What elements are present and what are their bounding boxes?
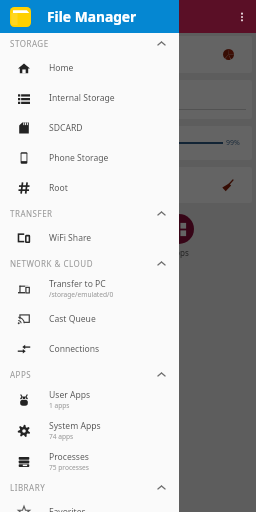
button[interactable]	[4, 36, 252, 73]
staticText: System Apps	[49, 420, 101, 432]
button[interactable]: More options	[228, 0, 256, 33]
button[interactable]: Internal Storage	[0, 83, 179, 113]
staticText: STORAGE	[10, 38, 49, 49]
staticText: WiFi Share	[49, 232, 92, 244]
staticText: Transfer to PC	[49, 278, 106, 290]
staticText: Cast Queue	[49, 313, 96, 325]
button[interactable]: APPS	[0, 364, 179, 384]
staticText: Favorites	[49, 506, 86, 512]
staticText: 75 processes	[49, 463, 89, 472]
button[interactable]	[4, 167, 252, 203]
staticText: Phone Storage	[49, 152, 109, 164]
button[interactable]: Favorites	[0, 497, 179, 512]
button[interactable]: Images	[54, 214, 104, 258]
staticText: NETWORK & CLOUD	[10, 258, 94, 269]
button[interactable]: SDCARD	[0, 113, 179, 143]
button[interactable]: Phone Storage	[0, 143, 179, 173]
staticText: SDCARD	[49, 122, 83, 134]
staticText: 1 apps	[49, 401, 70, 410]
staticText: /storage/emulated/0	[49, 290, 114, 299]
button[interactable]: File Manager	[0, 0, 179, 33]
staticText: Home	[49, 62, 74, 74]
button[interactable]: STORAGE	[0, 33, 179, 53]
button[interactable]: WiFi Share	[0, 223, 179, 253]
staticText: Processes	[49, 451, 89, 463]
staticText: TRANSFER	[10, 208, 53, 219]
button[interactable]: TRANSFER	[0, 203, 179, 223]
button[interactable]: System Apps	[0, 415, 179, 446]
staticText: 74 apps	[49, 432, 74, 441]
staticText: 99%	[226, 138, 240, 148]
button[interactable]	[4, 80, 252, 119]
button[interactable]: NETWORK & CLOUD	[0, 253, 179, 273]
button[interactable]: 99%	[4, 126, 252, 160]
staticText: Root	[49, 182, 68, 194]
button[interactable]: Root	[0, 173, 179, 203]
button[interactable]: Processes	[0, 446, 179, 477]
staticText: LIBRARY	[10, 482, 46, 493]
button[interactable]: Connections	[0, 334, 179, 364]
staticText: Connections	[49, 343, 100, 355]
staticText: File Manager	[47, 7, 137, 26]
button[interactable]: Apps	[154, 214, 204, 258]
button[interactable]: Home	[0, 53, 179, 83]
staticText: APPS	[10, 369, 32, 380]
button[interactable]: User Apps	[0, 384, 179, 415]
staticText: Internal Storage	[49, 92, 115, 104]
button[interactable]: Docs	[4, 214, 54, 258]
button[interactable]: Cast Queue	[0, 304, 179, 334]
staticText: Apps	[170, 247, 189, 258]
staticText: User Apps	[49, 389, 91, 401]
button[interactable]: Transfer to PC	[0, 273, 179, 304]
button[interactable]: LIBRARY	[0, 477, 179, 497]
